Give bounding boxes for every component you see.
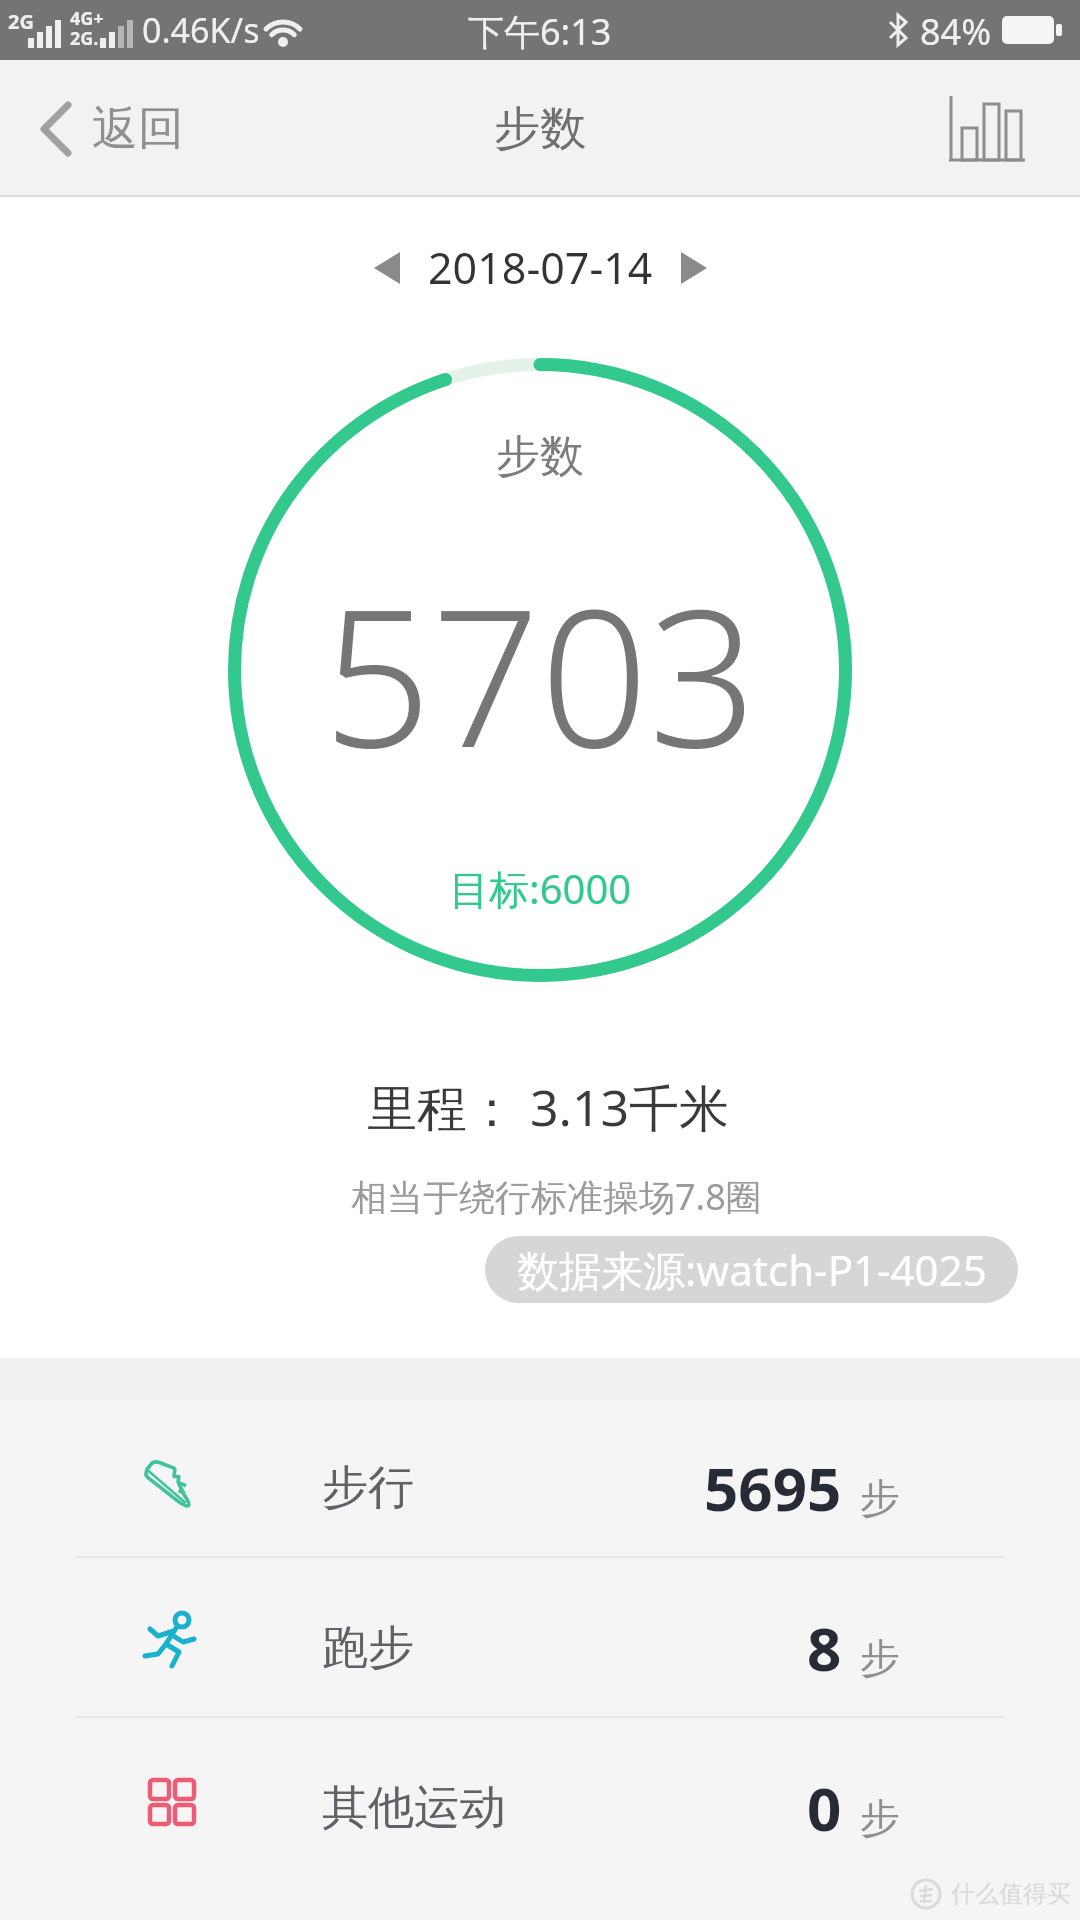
staticText: 目标:6000 [449,861,632,916]
button[interactable]: 返回 [40,60,184,197]
staticText: 里程： 3.13千米 [367,1073,730,1141]
button[interactable] [669,243,719,293]
button[interactable]: 其他运动 [0,1728,1080,1888]
staticText: 5695 [704,1447,842,1529]
staticText: 0.46K/s [142,7,260,53]
staticText: 步 [860,1473,900,1523]
staticText: 步 [860,1793,900,1843]
staticText: 8 [807,1607,842,1689]
staticText: 步行 [322,1459,414,1517]
staticText: 4G+ [70,6,104,31]
staticText: 跑步 [322,1619,414,1677]
staticText: 其他运动 [322,1779,506,1837]
button[interactable]: 步行 [0,1408,1080,1568]
staticText: 84% [920,7,992,53]
button[interactable]: 跑步 [0,1568,1080,1728]
staticText: 2018-07-14 [428,238,653,297]
staticText: 相当于绕行标准操场7.8圈 [351,1172,762,1216]
staticText: 步数 [494,100,586,158]
staticText: 2G [8,8,34,35]
staticText: 步 [860,1633,900,1683]
button[interactable] [949,96,1025,162]
staticText: 0 [807,1767,842,1849]
button[interactable]: 数据来源:watch-P1-4025 [485,1236,1018,1303]
staticText: 2G. [70,26,99,51]
button[interactable] [362,243,412,293]
staticText: 5703 [323,544,757,803]
staticText: 步数 [496,429,584,484]
staticText: 数据来源:watch-P1-4025 [517,1241,987,1298]
staticText: 下午6:13 [468,7,612,53]
staticText: 什么值得买 [951,1879,1071,1909]
staticText: 返回 [92,100,184,158]
